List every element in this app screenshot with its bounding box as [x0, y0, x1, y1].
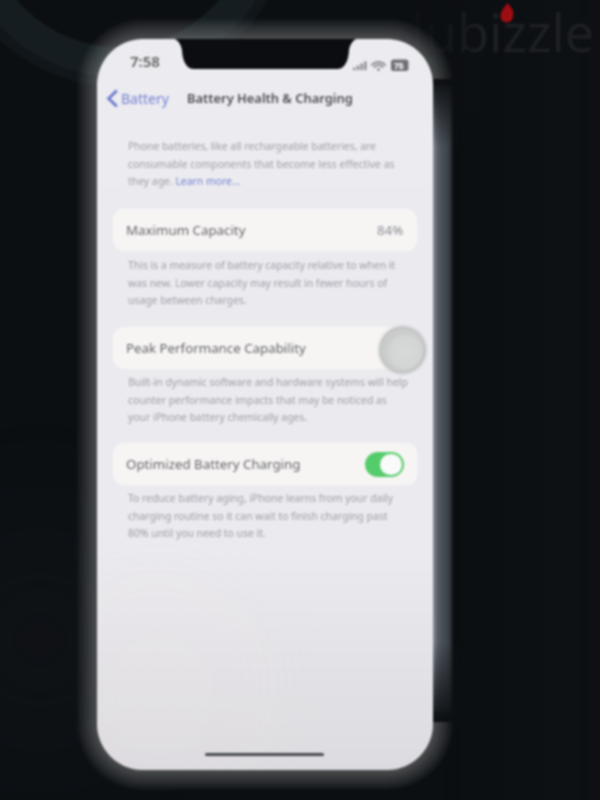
staticText: Optimized Battery Charging	[126, 455, 301, 473]
staticText: Battery Health & Charging	[187, 89, 353, 107]
staticText: This is a measure of battery capacity re…	[128, 258, 396, 307]
staticText: dubizzle	[393, 0, 595, 67]
staticText: Built-in dynamic software and hardware s…	[128, 375, 408, 424]
button[interactable]: Peak Performance Capability	[113, 327, 417, 369]
staticText: Maximum Capacity	[126, 221, 246, 239]
staticText: Phone batteries, like all rechargeable b…	[128, 139, 395, 188]
staticText: 75	[394, 60, 404, 72]
staticText: To reduce battery aging, iPhone learns f…	[128, 491, 394, 540]
button[interactable]: Optimized Battery Charging	[113, 443, 417, 485]
staticText: 7:58	[130, 51, 160, 71]
staticText: Battery	[121, 89, 169, 108]
button[interactable]: Battery	[101, 85, 175, 112]
staticText: Peak Performance Capability	[126, 339, 306, 357]
staticText: 84%	[377, 221, 404, 239]
button[interactable]: Maximum Capacity	[113, 209, 417, 251]
button[interactable]: Optimized Battery Charging toggle	[365, 452, 404, 477]
